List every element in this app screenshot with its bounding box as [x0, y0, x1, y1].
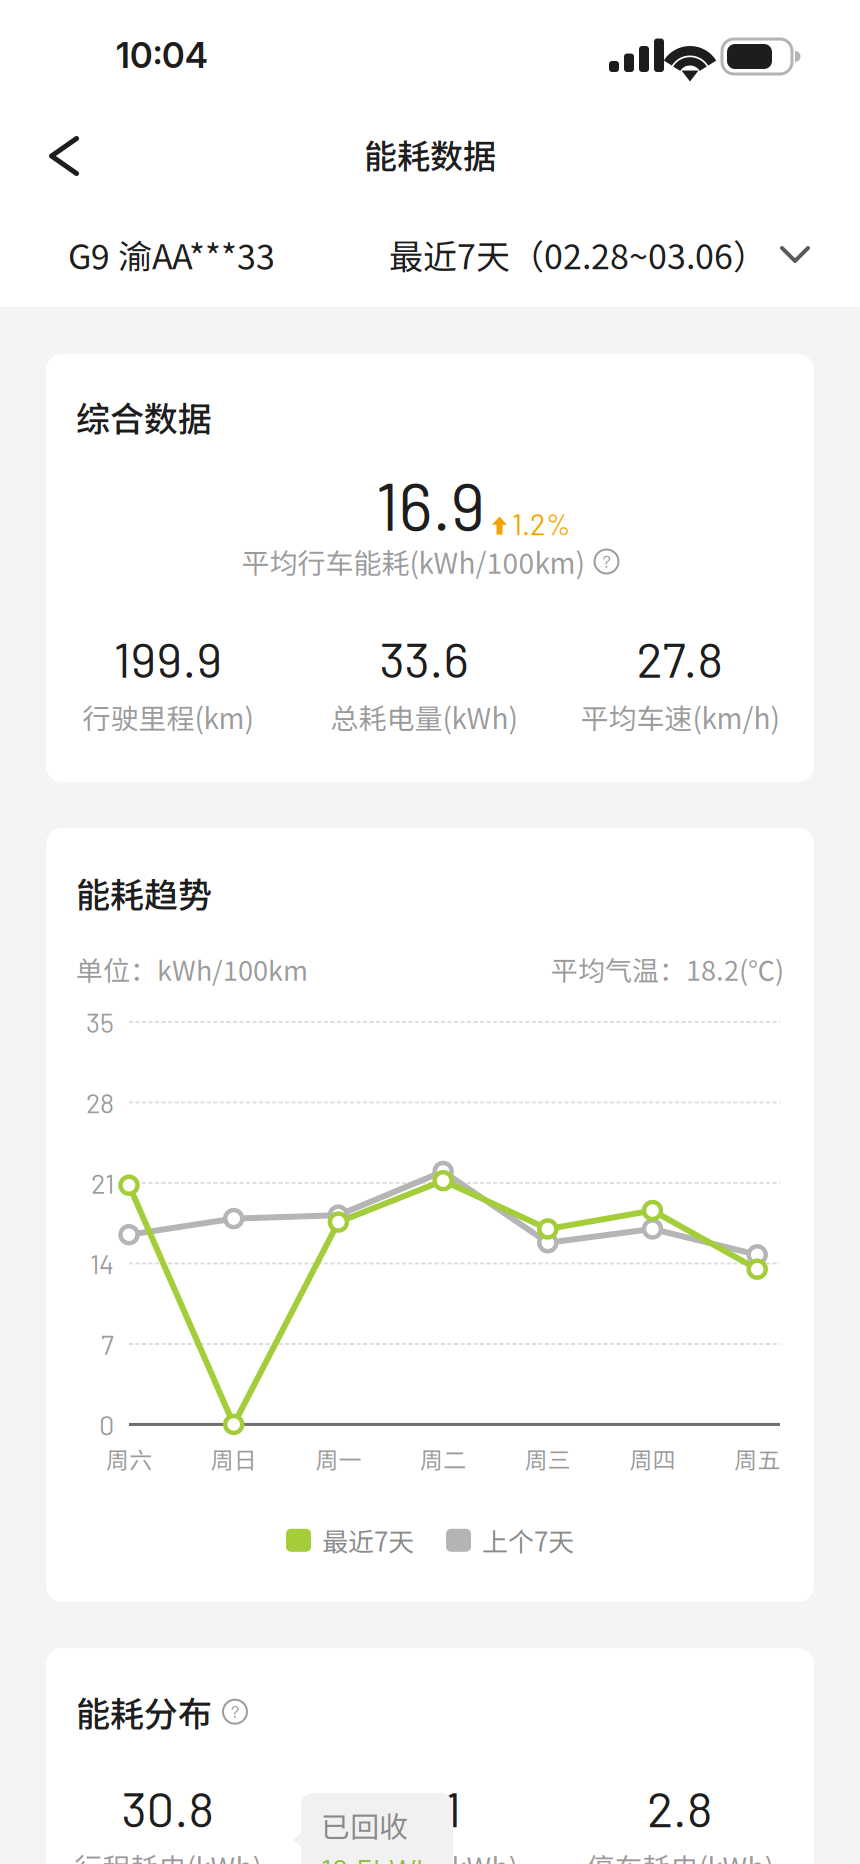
- staticText: 30.8: [121, 1778, 214, 1837]
- staticText: 35: [86, 1006, 114, 1038]
- button[interactable]: 最近7天（02.28~03.06）: [389, 205, 809, 304]
- staticText: 10:04: [116, 34, 208, 76]
- staticText: 16.9: [375, 465, 484, 544]
- staticText: 14: [90, 1247, 114, 1280]
- staticText: 周二: [420, 1442, 466, 1475]
- staticText: 周日: [211, 1442, 257, 1475]
- staticText: 上个7天: [482, 1521, 574, 1559]
- staticText: 平均行车能耗(kWh/100km): [241, 541, 584, 582]
- staticText: 平均车速(km/h): [580, 697, 779, 737]
- staticText: 单位：kWh/100km: [76, 949, 308, 988]
- staticText: 周六: [106, 1442, 152, 1475]
- staticText: 28: [86, 1086, 114, 1119]
- staticText: 1.2%: [512, 506, 571, 541]
- staticText: 最近7天（02.28~03.06）: [389, 230, 767, 279]
- staticText: 0: [99, 1408, 114, 1441]
- staticText: 33.6: [379, 629, 468, 688]
- staticText: 周五: [734, 1442, 780, 1475]
- staticText: 行程耗电(kWh): [74, 1846, 261, 1864]
- staticText: 停车耗电(kWh): [586, 1846, 773, 1864]
- button[interactable]: 返回: [25, 117, 103, 195]
- staticText: 能耗分布: [76, 1687, 212, 1736]
- staticText: 199.9: [113, 629, 222, 688]
- staticText: 2.8: [647, 1778, 713, 1837]
- staticText: 周一: [315, 1442, 361, 1475]
- staticText: 7: [101, 1328, 114, 1360]
- staticText: 行驶里程(km): [82, 697, 253, 737]
- staticText: 综合数据: [76, 392, 212, 441]
- staticText: 21: [91, 1167, 114, 1199]
- staticText: 能耗趋势: [76, 868, 212, 917]
- staticText: 能耗数据: [364, 130, 496, 178]
- staticText: 已回收: [321, 1804, 408, 1846]
- staticText: 27.8: [636, 629, 723, 688]
- staticText: 最近7天: [322, 1521, 414, 1559]
- staticText: 周四: [629, 1442, 675, 1475]
- staticText: 19.5kWh: [321, 1851, 433, 1864]
- staticText: ?: [231, 1700, 239, 1721]
- staticText: G9 渝AA***33: [68, 230, 275, 279]
- staticText: 空调耗电(kWh): [330, 1846, 517, 1864]
- staticText: 12.1: [387, 1778, 461, 1837]
- staticText: 周三: [525, 1442, 571, 1475]
- staticText: ?: [602, 550, 610, 571]
- staticText: 平均气温：18.2(℃): [551, 949, 784, 988]
- staticText: 总耗电量(kWh): [330, 697, 517, 737]
